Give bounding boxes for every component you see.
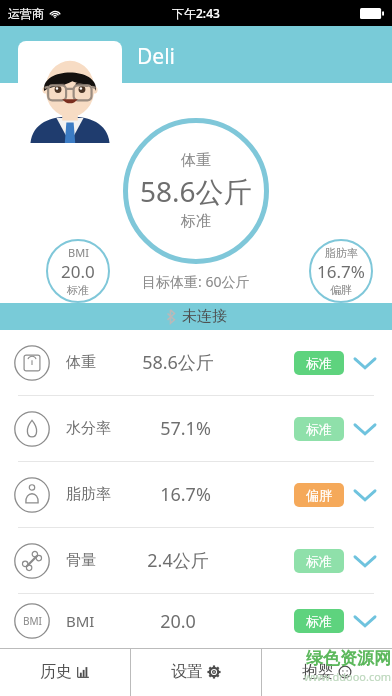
button[interactable]: BMI [45,239,111,303]
staticText: 20.0 [160,609,196,634]
button[interactable]: 抱婴 [262,648,392,696]
button[interactable]: 体重 [123,118,269,264]
staticText: 57.1% [160,416,211,441]
staticText: 抱婴 [302,662,334,682]
button[interactable]: BMI [0,594,392,648]
button[interactable]: Avatar [18,41,122,143]
staticText: 绿色资源网 [306,648,391,669]
button[interactable]: 骨量 [0,528,392,593]
button[interactable]: Expand BMI [352,608,378,634]
staticText: 标准 [306,421,332,437]
staticText: BMI [68,245,89,260]
staticText: BMI [23,614,42,628]
staticText: BMI [66,611,95,631]
button[interactable]: Expand 骨量 [352,548,378,574]
button[interactable]: Expand 体重 [352,350,378,376]
button[interactable]: 未连接 [0,303,392,330]
staticText: 体重 [66,353,96,372]
staticText: 标准 [306,355,332,371]
staticText: 脂肪率 [66,485,111,504]
staticText: 设置 [171,662,203,682]
staticText: 2.4公斤 [147,548,209,573]
staticText: 水分率 [66,419,111,438]
staticText: 历史 [40,662,72,682]
staticText: 标准 [306,553,332,569]
staticText: 标准 [67,283,89,297]
staticText: 偏胖 [330,283,352,297]
staticText: 下午2:43 [172,5,220,21]
staticText: 骨量 [66,551,96,570]
staticText: 目标体重: 60公斤 [142,272,250,291]
staticText: 58.6公斤 [140,172,252,210]
staticText: 标准 [181,212,211,231]
staticText: 58.6公斤 [142,350,214,375]
staticText: 标准 [306,613,332,629]
staticText: 未连接 [182,307,227,326]
staticText: www.ddooo.com [304,669,392,684]
staticText: 脂肪率 [325,246,358,260]
staticText: 运营商 [8,6,44,21]
staticText: 20.0 [61,260,95,283]
staticText: Deli [137,42,176,71]
staticText: 16.7% [317,260,365,283]
button[interactable]: 水分率 [0,396,392,461]
staticText: 体重 [181,151,211,170]
staticText: 偏胖 [306,487,332,503]
button[interactable]: 历史 [0,648,130,696]
button[interactable]: Expand 脂肪率 [352,482,378,508]
staticText: 16.7% [160,482,211,507]
button[interactable]: 设置 [131,648,261,696]
button[interactable]: Expand 水分率 [352,416,378,442]
button[interactable]: 脂肪率 [0,462,392,527]
button[interactable]: 脂肪率 [308,239,374,303]
button[interactable]: 体重 [0,330,392,395]
